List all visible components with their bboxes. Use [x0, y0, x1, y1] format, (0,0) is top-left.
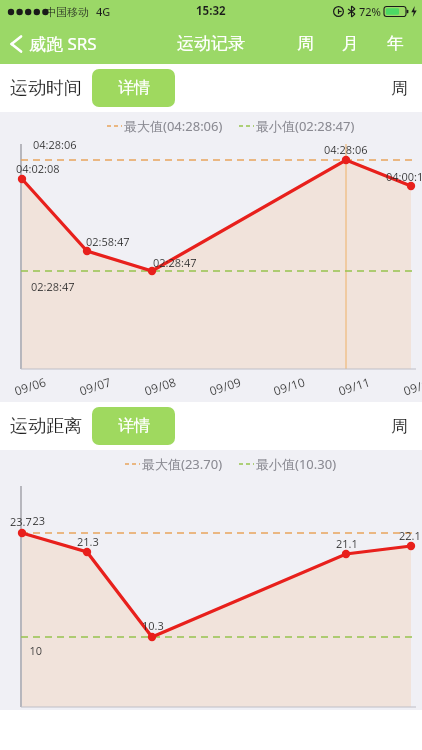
button[interactable]: 详情	[92, 69, 175, 107]
other: Back	[10, 34, 23, 54]
staticText: 最大值(23.70)	[142, 455, 223, 473]
staticText: 最大值(04:28:06)	[124, 117, 223, 135]
staticText: 年	[387, 33, 404, 54]
button[interactable]: 详情	[92, 407, 175, 445]
staticText: 运动时间	[10, 77, 82, 100]
staticText: 运动记录	[177, 33, 245, 54]
button[interactable]: Back	[0, 28, 105, 59]
button[interactable]: 周	[293, 29, 318, 58]
staticText: 中国移动	[45, 5, 89, 19]
staticText: 最小值(10.30)	[256, 455, 337, 473]
staticText: 周	[391, 416, 408, 437]
staticText: 月	[342, 33, 359, 54]
staticText: 15:32	[196, 3, 226, 19]
staticText: 周	[297, 33, 314, 54]
staticText: 4G	[96, 4, 111, 19]
staticText: 最小值(02:28:47)	[256, 117, 355, 135]
staticText: 运动距离	[10, 415, 82, 438]
staticText: 详情	[118, 416, 150, 436]
staticText: 72%	[359, 4, 381, 19]
staticText: 详情	[118, 78, 150, 98]
button[interactable]: 年	[383, 29, 408, 58]
staticText: 威跑 SRS	[29, 32, 97, 55]
button[interactable]: 月	[338, 29, 363, 58]
staticText: 周	[391, 78, 408, 99]
